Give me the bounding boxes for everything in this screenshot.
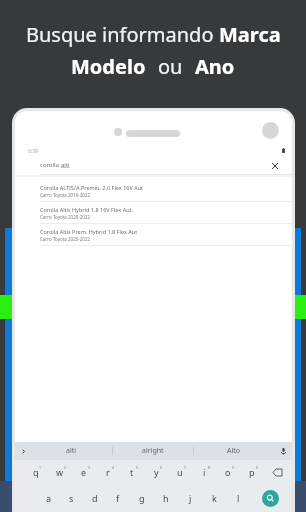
button[interactable]: r (96, 460, 120, 484)
button[interactable]: t (120, 460, 144, 484)
staticText: 9 (232, 465, 235, 470)
staticText: l (237, 492, 240, 504)
button[interactable]: w (48, 460, 72, 484)
button[interactable]: Corolla Altis Hybrid 1.8 16V Flex Aut. (15, 202, 292, 224)
staticText: 2 (64, 465, 67, 470)
button[interactable]: h (154, 484, 178, 512)
button[interactable]: Corolla ALTIS/A.Premiu. 2.0 Flex 16V Aut (15, 180, 292, 202)
staticText: o (225, 466, 231, 478)
button[interactable]: i (192, 460, 216, 484)
staticText: y (154, 466, 159, 478)
button[interactable]: Delete (264, 460, 290, 484)
staticText: 6 (160, 465, 163, 470)
staticText: alti (61, 161, 70, 169)
button[interactable]: q (23, 460, 48, 484)
staticText: g (139, 492, 145, 504)
staticText: i (203, 466, 206, 478)
staticText: 7 (184, 465, 187, 470)
button[interactable]: u (168, 460, 192, 484)
button[interactable]: Search (250, 484, 290, 512)
button[interactable]: d (83, 484, 106, 512)
staticText: Busque informando (26, 21, 219, 48)
button[interactable]: alright (113, 442, 193, 460)
button[interactable]: g (130, 484, 154, 512)
button[interactable]: e (72, 460, 96, 484)
button[interactable]: y (144, 460, 168, 484)
staticText: s (69, 492, 74, 504)
staticText: e (81, 466, 87, 478)
button[interactable]: l (226, 484, 250, 512)
staticText: Alto (227, 446, 241, 456)
staticText: q (33, 466, 39, 478)
staticText: Marca (219, 21, 281, 48)
button[interactable]: o (216, 460, 240, 484)
button[interactable]: Voice input (274, 442, 292, 460)
staticText: t (130, 466, 134, 478)
staticText: 3 (88, 465, 91, 470)
staticText: Carro Toyota 2010-2022 (40, 192, 91, 198)
staticText: Carro Toyota 2020-2022 (40, 236, 91, 242)
staticText: 6:39 (28, 148, 38, 155)
staticText: corolla (40, 161, 61, 169)
button[interactable]: alti (31, 442, 112, 460)
staticText: j (189, 492, 192, 504)
button[interactable]: More suggestions (15, 442, 31, 460)
staticText: a (46, 492, 52, 504)
staticText: 5 (136, 465, 139, 470)
staticText: ou (158, 53, 183, 80)
button[interactable]: f (106, 484, 130, 512)
staticText: Corolla ALTIS/A.Premiu. 2.0 Flex 16V Aut (40, 184, 144, 191)
staticText: d (92, 492, 98, 504)
staticText: 8 (208, 465, 211, 470)
staticText: Modelo (71, 53, 146, 80)
button[interactable]: a (37, 484, 60, 512)
staticText: r (106, 466, 110, 478)
staticText: u (177, 466, 183, 478)
button[interactable]: p (240, 460, 264, 484)
button[interactable]: j (178, 484, 202, 512)
button[interactable]: s (60, 484, 83, 512)
staticText: Corolla Altis Hybrid 1.8 16V Flex Aut. (40, 206, 134, 213)
button[interactable]: k (202, 484, 226, 512)
staticText: k (212, 492, 217, 504)
staticText: p (249, 466, 255, 478)
staticText: f (116, 492, 120, 504)
staticText: 4 (112, 465, 115, 470)
staticText: 0 (256, 465, 259, 470)
staticText: alti (66, 446, 77, 456)
staticText: h (163, 492, 169, 504)
staticText: Ano (195, 53, 235, 80)
button[interactable]: Alto (194, 442, 274, 460)
staticText: w (56, 466, 64, 478)
staticText: Carro Toyota 2020-2022 (40, 214, 91, 220)
button[interactable]: Corolla Altis Prem. Hybrid 1.8 Flex Aut (15, 224, 292, 246)
staticText: alright (142, 446, 164, 456)
staticText: 1 (39, 465, 42, 470)
staticText: Corolla Altis Prem. Hybrid 1.8 Flex Aut (40, 228, 138, 235)
